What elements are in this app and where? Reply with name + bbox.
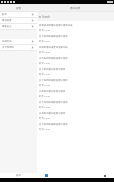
staticText: 昨天14:30 (39, 39, 50, 42)
staticText: 昨天14:30 (39, 105, 50, 108)
button[interactable]: 隐私安全 (0, 24, 37, 29)
staticText: 昨天14:30 (39, 61, 50, 64)
staticText: 昨天14:30 (39, 94, 50, 97)
staticText: 以下应用的权限设置已更新 (39, 123, 68, 126)
staticText: 通知设置 (70, 6, 81, 9)
staticText: 以下应用的权限设置已更新 (39, 101, 68, 104)
button[interactable]: 返回 (0, 173, 37, 178)
button[interactable]: 以下新的通知设置已更新 (37, 65, 114, 76)
staticText: 以下新的通知设置已更新 (39, 68, 66, 71)
staticText: 昨天14:30 (39, 83, 50, 86)
button[interactable]: 以下应用的权限设置已更新 (37, 76, 114, 87)
staticText: 设置 (16, 6, 22, 9)
staticText: 账号 (2, 13, 7, 16)
button[interactable]: 通知设置 (0, 18, 37, 23)
button[interactable]: 账号 (0, 12, 37, 17)
staticText: 关于和帮助 (2, 46, 14, 49)
other: Search (39, 16, 41, 18)
button[interactable]: Search (37, 12, 114, 21)
staticText: 你的新通知设置已更新完成 (39, 46, 68, 49)
button[interactable]: 关于和帮助 (0, 45, 37, 50)
staticText: 存储空间 (2, 40, 12, 43)
button[interactable]: 你的新通知设置已更新完成 (37, 43, 114, 54)
button[interactable]: 有新的应用通知设置已更新完成 (37, 21, 114, 32)
button[interactable]: 以下应用的权限设置已更新 (37, 32, 114, 43)
staticText: 返回 (16, 174, 21, 177)
staticText: 昨天14:30 (39, 50, 50, 53)
staticText: 已有新的通知设置已更新 (39, 90, 66, 93)
staticText: 昨天14:30 (39, 72, 50, 75)
button[interactable]: 已为应用的权限设置已更新 (37, 54, 114, 65)
staticText: 以下应用的权限设置已更新 (39, 35, 68, 38)
button[interactable]: 以下应用的权限设置已更新 (37, 98, 114, 109)
staticText: 以下应用的权限设置已更新 (39, 79, 68, 82)
staticText: 通知设置 (2, 19, 12, 22)
button[interactable]: 已有新的通知设置已更新 (37, 87, 114, 98)
staticText: 昨天14:30 (39, 116, 50, 119)
staticText: 隐私安全 (2, 25, 12, 28)
button[interactable]: 已有新的通知设置已更新 (37, 109, 114, 120)
button[interactable]: Recents (96, 173, 114, 178)
staticText: 昨天14:30 (39, 28, 50, 31)
staticText: Search (42, 15, 51, 19)
button[interactable]: Home (37, 173, 55, 178)
staticText: 已为应用的权限设置已更新 (39, 57, 68, 60)
staticText: 昨天14:30 (39, 127, 50, 130)
button[interactable]: 以下应用的权限设置已更新 (37, 120, 114, 131)
staticText: 已有新的通知设置已更新 (39, 112, 66, 115)
staticText: 有新的应用通知设置已更新完成 (39, 24, 73, 27)
button[interactable]: 存储空间 (0, 39, 37, 44)
